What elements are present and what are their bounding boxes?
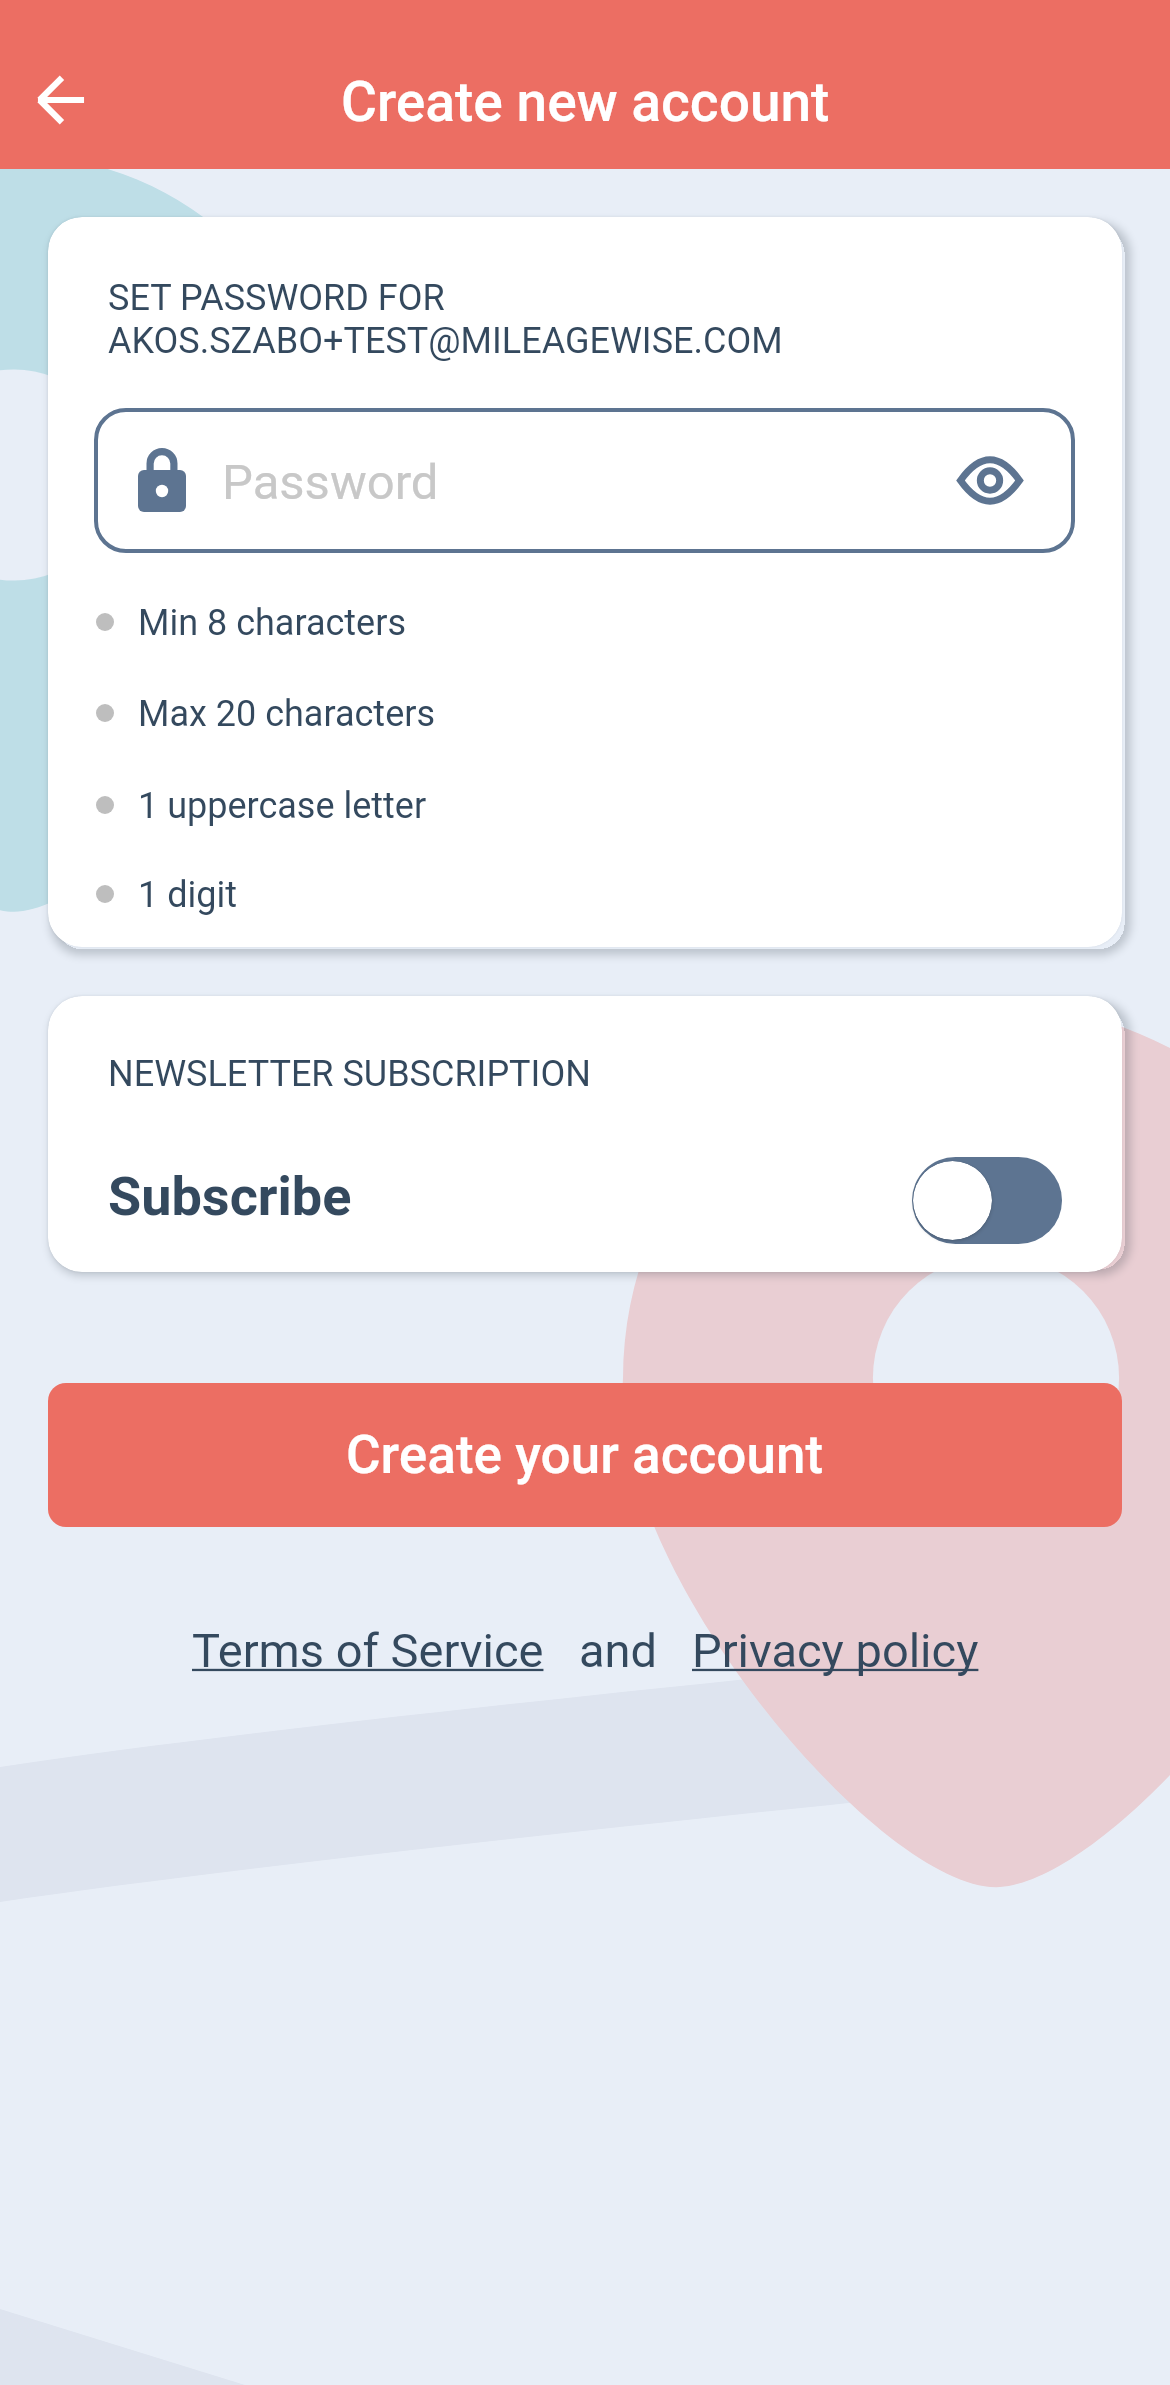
button[interactable]: Password (94, 408, 1075, 553)
staticText: SET PASSWORD FOR AKOS.SZABO+TEST@MILEAGE… (108, 277, 783, 362)
button[interactable]: Terms of Service (192, 1623, 544, 1678)
staticText: Create your account (346, 1424, 824, 1486)
staticText: 1 uppercase letter (138, 785, 427, 827)
staticText: Terms of Service (192, 1623, 544, 1678)
button[interactable]: Privacy policy (692, 1623, 979, 1678)
button[interactable]: Show password (935, 458, 1045, 503)
staticText: Min 8 characters (138, 602, 406, 644)
button[interactable]: Subscribe toggle (904, 1149, 1070, 1252)
staticText: Subscribe (108, 1165, 352, 1228)
button[interactable]: Create your account (48, 1383, 1122, 1527)
staticText: Max 20 characters (138, 693, 436, 735)
staticText: Password (222, 454, 439, 511)
button[interactable]: Back (4, 43, 117, 156)
staticText: and (544, 1623, 692, 1678)
staticText: NEWSLETTER SUBSCRIPTION (108, 1053, 591, 1095)
staticText: Create new account (341, 70, 830, 134)
staticText: 1 digit (138, 874, 237, 916)
staticText: Privacy policy (692, 1623, 979, 1678)
